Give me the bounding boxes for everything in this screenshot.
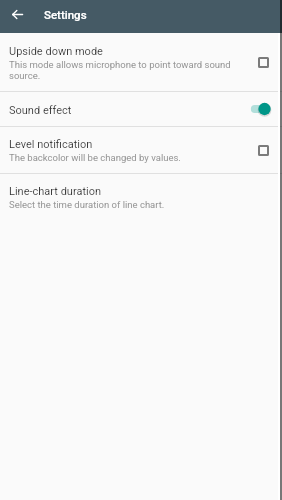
button[interactable]: Sound effect [0,92,282,126]
button[interactable]: Upside down mode [0,33,282,91]
staticText: Settings [44,8,87,21]
staticText: The backcolor will be changed by values. [9,152,181,163]
button[interactable]: Level notification checkbox [252,139,274,161]
staticText: Line-chart duration [9,185,102,198]
staticText: Upside down mode [9,45,103,58]
button[interactable]: Sound effect on [249,99,271,119]
button[interactable]: Level notification [0,127,282,173]
button[interactable]: Line-chart duration [0,174,282,220]
staticText: Select the time duration of line chart. [9,199,165,210]
staticText: Sound effect [9,104,72,117]
button[interactable]: Back [2,0,32,29]
button[interactable]: Upside down mode checkbox [252,51,274,73]
staticText: This mode allows microphone to point tow… [9,59,240,81]
staticText: Level notification [9,138,93,151]
